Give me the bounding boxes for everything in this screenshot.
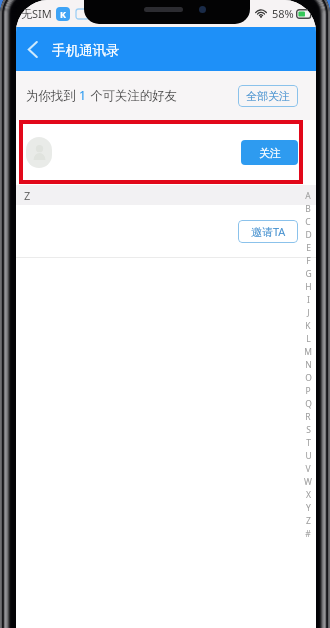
staticText: 1: [79, 87, 87, 104]
staticText: 关注: [259, 146, 281, 160]
staticText: L: [306, 333, 311, 345]
staticText: A: [305, 190, 311, 202]
staticText: J: [307, 307, 310, 319]
staticText: F: [306, 255, 311, 267]
button[interactable]: 全部关注: [238, 85, 298, 107]
staticText: 无SIM: [21, 6, 52, 21]
staticText: Z: [24, 188, 31, 203]
staticText: G: [305, 268, 312, 280]
staticText: H: [305, 281, 312, 293]
staticText: K: [305, 320, 311, 332]
button[interactable]: 返回: [16, 32, 50, 66]
staticText: R: [305, 411, 311, 423]
button[interactable]: 关注: [241, 140, 298, 165]
staticText: 个可关注的好友: [87, 87, 177, 104]
staticText: D: [305, 229, 312, 241]
staticText: I: [307, 294, 310, 306]
staticText: #: [305, 528, 311, 540]
staticText: M: [304, 346, 312, 358]
staticText: P: [305, 385, 311, 397]
staticText: K: [60, 8, 66, 20]
staticText: T: [306, 437, 311, 449]
staticText: U: [305, 450, 312, 462]
staticText: B: [305, 203, 311, 215]
staticText: O: [305, 372, 312, 384]
staticText: Y: [306, 502, 311, 514]
staticText: V: [305, 463, 311, 475]
staticText: Q: [305, 398, 312, 410]
staticText: 全部关注: [246, 89, 290, 103]
staticText: 手机通讯录: [52, 42, 120, 59]
button[interactable]: 邀请TA: [238, 220, 298, 243]
staticText: Z: [306, 515, 311, 527]
staticText: S: [306, 424, 311, 436]
staticText: 为你找到: [26, 87, 79, 104]
staticText: C: [305, 216, 311, 228]
staticText: 58%: [272, 6, 294, 21]
staticText: X: [306, 489, 311, 501]
staticText: N: [305, 359, 312, 371]
staticText: W: [304, 476, 312, 488]
staticText: 邀请TA: [251, 224, 286, 239]
staticText: E: [306, 242, 311, 254]
